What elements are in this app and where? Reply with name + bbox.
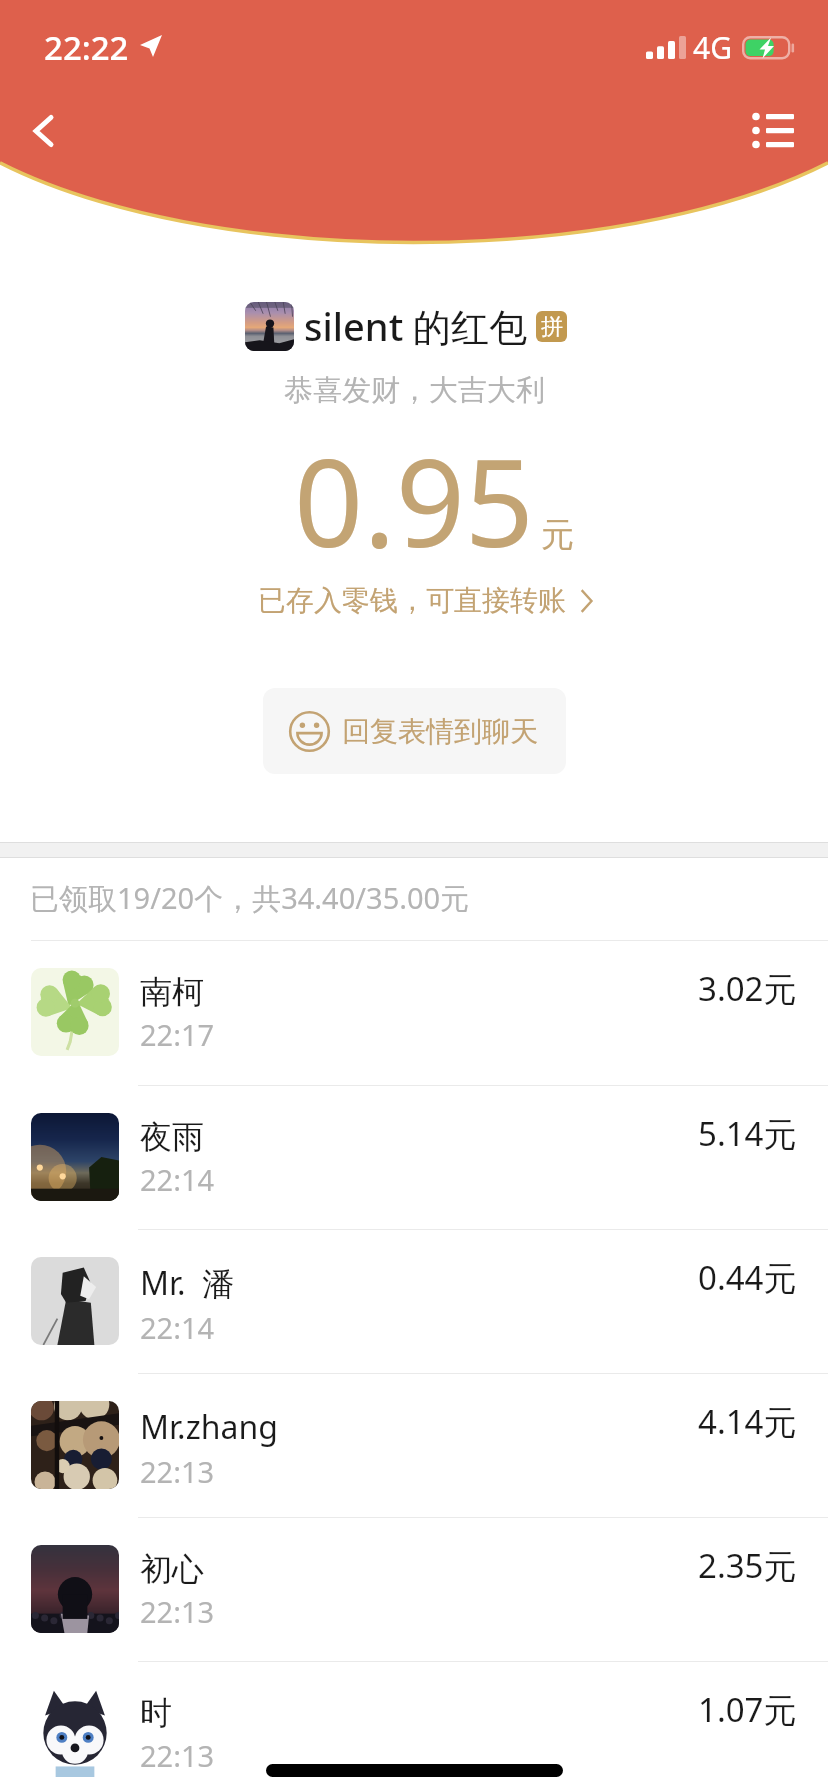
staticText: 22:14 xyxy=(140,1160,215,1199)
staticText: 0.44元 xyxy=(698,1255,797,1300)
staticText: 22:13 xyxy=(140,1736,215,1775)
button[interactable]: Mr. 潘 xyxy=(0,1230,828,1373)
staticText: Mr.zhang xyxy=(140,1405,278,1449)
staticText: 22:17 xyxy=(140,1015,215,1054)
staticText: 4.14元 xyxy=(698,1399,797,1444)
button[interactable]: Mr.zhang xyxy=(0,1374,828,1517)
staticText: 初心 xyxy=(140,1549,204,1589)
button[interactable]: 已存入零钱，可直接转账 xyxy=(258,583,593,618)
staticText: 3.02元 xyxy=(698,966,797,1011)
staticText: 22:22 xyxy=(44,25,129,70)
button[interactable]: 初心 xyxy=(0,1518,828,1661)
staticText: 0.95 xyxy=(294,418,535,583)
staticText: 回复表情到聊天 xyxy=(342,714,538,749)
button[interactable]: Menu xyxy=(742,98,804,160)
staticText: Mr. 潘 xyxy=(140,1261,235,1305)
staticText: 4G xyxy=(693,27,732,68)
staticText: 元 xyxy=(541,514,574,556)
staticText: 南柯 xyxy=(140,972,204,1012)
button[interactable]: 时 xyxy=(0,1662,828,1792)
staticText: 拼 xyxy=(541,313,563,341)
button[interactable]: 南柯 xyxy=(0,941,828,1085)
staticText: 已领取19/20个，共34.40/35.00元 xyxy=(30,878,470,918)
button[interactable]: 夜雨 xyxy=(0,1086,828,1229)
staticText: 22:13 xyxy=(140,1592,215,1631)
staticText: 2.35元 xyxy=(698,1543,797,1588)
button[interactable]: Back xyxy=(14,100,76,162)
staticText: 22:14 xyxy=(140,1308,215,1347)
staticText: 恭喜发财，大吉大利 xyxy=(284,372,545,409)
staticText: 5.14元 xyxy=(698,1111,797,1156)
staticText: 已存入零钱，可直接转账 xyxy=(258,583,566,618)
button[interactable]: 回复表情到聊天 xyxy=(263,688,566,774)
staticText: 22:13 xyxy=(140,1452,215,1491)
staticText: 夜雨 xyxy=(140,1117,204,1157)
staticText: silent 的红包 xyxy=(304,300,528,352)
staticText: 时 xyxy=(140,1693,172,1733)
staticText: 1.07元 xyxy=(698,1687,797,1732)
